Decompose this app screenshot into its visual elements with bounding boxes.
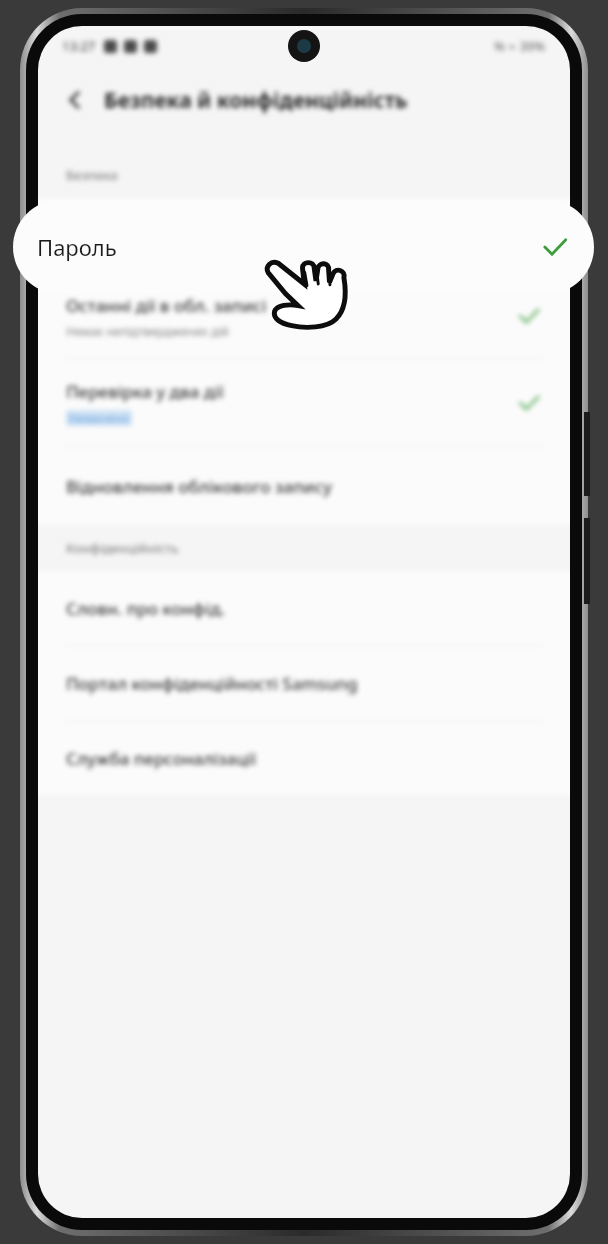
staticText: Портал конфіденційності Samsung	[66, 672, 358, 695]
staticText: 13:27	[62, 37, 96, 55]
other: Selected	[540, 232, 570, 262]
staticText: Безпека й конфіденційність	[104, 86, 408, 115]
staticText: Служба персоналізації	[66, 747, 256, 770]
staticText: Немає непідтверджених дій	[66, 323, 229, 339]
staticText: Конфіденційність	[66, 539, 179, 557]
staticText: Останні дії в обл. записі	[66, 294, 267, 317]
button[interactable]: Відновлення облікового запису	[38, 447, 570, 525]
button[interactable]: Портал конфіденційності Samsung	[38, 646, 570, 720]
staticText: Відновлення облікового запису	[66, 475, 332, 498]
button[interactable]: Перевірка у два дії	[38, 360, 570, 446]
button[interactable]: Безпечне блокування	[38, 198, 570, 272]
staticText: Пароль	[37, 232, 117, 262]
button[interactable]: Служба персоналізації	[38, 721, 570, 795]
staticText: Словн. про конфід.	[66, 597, 226, 620]
staticText: Увімкнено	[68, 410, 130, 426]
staticText: Безпека	[66, 166, 118, 184]
button[interactable]: Пароль	[13, 200, 594, 294]
button[interactable]: Словн. про конфід.	[38, 571, 570, 645]
staticText: Безпечне блокування	[66, 224, 250, 247]
staticText: Перевірка у два дії	[66, 380, 224, 403]
staticText: % ⌁ 39%	[494, 37, 546, 55]
button[interactable]: Останні дії в обл. записі	[38, 273, 570, 359]
